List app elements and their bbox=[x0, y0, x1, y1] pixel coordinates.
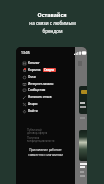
button[interactable]: Интернет-заказы bbox=[16, 80, 75, 87]
staticText: Акции bbox=[28, 102, 38, 106]
staticText: Написать отзыв bbox=[28, 95, 52, 99]
button[interactable]: Сообщения bbox=[16, 86, 75, 93]
staticText: Интернет-заказы bbox=[28, 82, 54, 86]
staticText: Корзина bbox=[28, 68, 41, 72]
staticText: Каталог bbox=[28, 61, 40, 65]
staticText: на связи с любимым брендом bbox=[29, 20, 76, 34]
button[interactable]: Написать отзыв bbox=[16, 93, 75, 100]
staticText: Скидка bbox=[44, 68, 55, 72]
staticText: 13:05 bbox=[21, 50, 30, 55]
staticText: Оставайся bbox=[37, 11, 67, 18]
button[interactable]: Выйти bbox=[16, 107, 75, 114]
staticText: Выйти bbox=[28, 109, 38, 113]
staticText: Сообщения bbox=[28, 88, 46, 92]
staticText: Публичный договор-оферта bbox=[27, 128, 48, 134]
staticText: Политика конфиденциальности bbox=[27, 136, 55, 142]
button[interactable]: Очки bbox=[16, 73, 75, 80]
staticText: Приложение работает совместно с магазино… bbox=[28, 148, 63, 157]
button[interactable]: Корзина bbox=[16, 66, 75, 73]
button[interactable]: Каталог bbox=[16, 59, 75, 66]
staticText: Очки bbox=[28, 75, 36, 79]
button[interactable]: Акции bbox=[16, 100, 75, 107]
